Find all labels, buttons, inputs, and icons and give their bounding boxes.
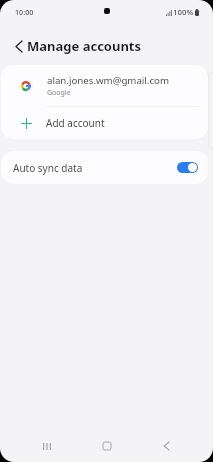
button[interactable]: alan.jones.wm@gmail.com [1, 65, 208, 106]
staticText: 10:00 [15, 7, 34, 17]
staticText: Add account [46, 116, 105, 130]
button[interactable]: Home [92, 432, 122, 462]
staticText: Auto sync data [13, 161, 83, 175]
button[interactable]: Auto sync data [1, 151, 208, 184]
button[interactable]: Recents [32, 432, 62, 462]
staticText: 100% [173, 7, 194, 18]
staticText: alan.jones.wm@gmail.com [47, 74, 169, 87]
button[interactable]: Add account [1, 107, 208, 139]
button[interactable]: Back [151, 432, 181, 462]
button[interactable]: Back [5, 34, 32, 58]
staticText: Google [47, 88, 71, 98]
staticText: Manage accounts [27, 37, 142, 55]
